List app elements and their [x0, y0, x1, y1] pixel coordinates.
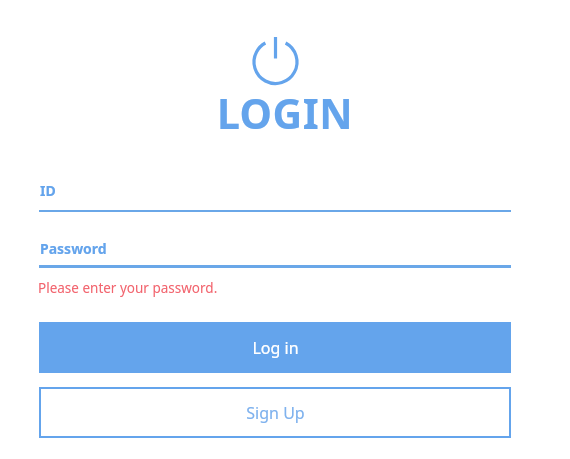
staticText: Please enter your password.: [38, 279, 218, 297]
button[interactable]: Log in: [39, 322, 511, 373]
other: Power: [251, 34, 300, 86]
staticText: Sign Up: [246, 402, 305, 424]
staticText: LOGIN: [0, 85, 570, 141]
staticText: ID: [40, 181, 56, 200]
button[interactable]: Sign Up: [39, 387, 511, 438]
staticText: Log in: [252, 337, 299, 359]
staticText: Password: [40, 239, 107, 258]
